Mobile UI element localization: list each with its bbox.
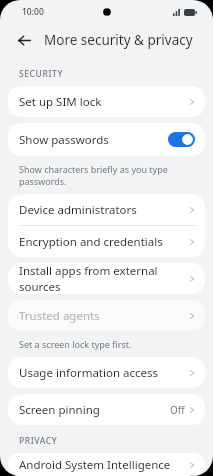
staticText: More security & privacy bbox=[44, 31, 193, 49]
button[interactable]: Back bbox=[13, 29, 35, 51]
button[interactable]: Screen pinning bbox=[8, 394, 205, 425]
staticText: 10:00 bbox=[22, 6, 44, 18]
button[interactable]: Show passwords bbox=[8, 123, 205, 156]
staticText: Trusted agents bbox=[19, 308, 189, 324]
staticText: Screen pinning bbox=[19, 402, 170, 418]
staticText: Set up SIM lock bbox=[19, 94, 189, 110]
staticText: Set a screen lock type first. bbox=[19, 338, 132, 350]
staticText: Device administrators bbox=[19, 202, 189, 218]
staticText: Off bbox=[170, 403, 185, 417]
button: Trusted agents bbox=[8, 300, 205, 331]
staticText: SECURITY bbox=[19, 68, 64, 80]
button[interactable]: Set up SIM lock bbox=[8, 86, 205, 117]
staticText: Encryption and credentials bbox=[19, 234, 189, 250]
button[interactable]: Usage information access bbox=[8, 357, 205, 388]
button[interactable]: Encryption and credentials bbox=[8, 226, 205, 257]
staticText: PRIVACY bbox=[19, 435, 58, 447]
button[interactable]: Install apps from external sources bbox=[8, 263, 205, 294]
staticText: Show passwords bbox=[19, 132, 168, 148]
staticText: Show characters briefly as you type pass… bbox=[19, 163, 197, 187]
staticText: Install apps from external sources bbox=[19, 263, 189, 294]
button[interactable]: Device administrators bbox=[8, 194, 205, 225]
button[interactable]: Android System Intelligence bbox=[8, 453, 205, 476]
staticText: Android System Intelligence bbox=[19, 457, 189, 473]
staticText: Usage information access bbox=[19, 365, 189, 381]
